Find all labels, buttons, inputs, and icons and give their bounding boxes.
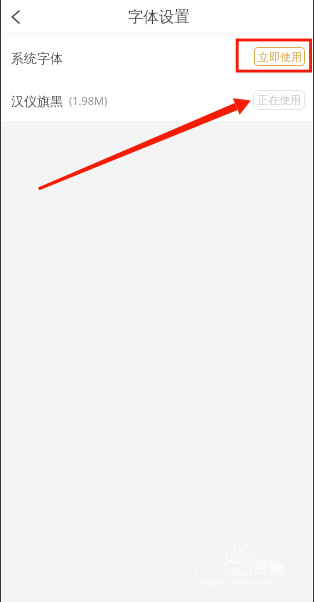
staticText: 字体设置 [128, 7, 190, 27]
staticText: 系统字体 [11, 50, 63, 66]
staticText: 正在使用 [257, 93, 301, 107]
staticText: 汉仪旗黑 [11, 93, 63, 109]
button[interactable]: Back [2, 3, 30, 31]
button[interactable]: 汉仪旗黑 [0, 79, 314, 122]
staticText: (1.98M) [69, 93, 108, 108]
button[interactable]: 立即使用 [254, 47, 305, 66]
button[interactable]: 正在使用 [253, 90, 305, 110]
staticText: 立即使用 [258, 50, 302, 64]
button[interactable]: 系统字体 [0, 36, 314, 79]
